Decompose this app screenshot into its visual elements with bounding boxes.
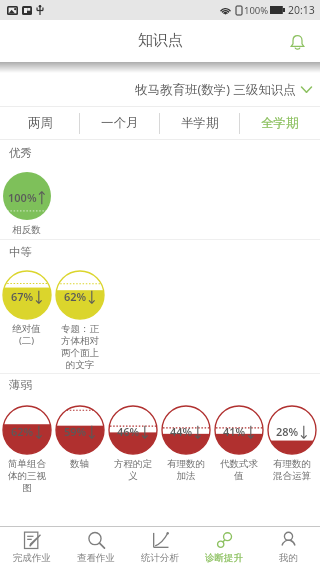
button[interactable]: 一个月	[80, 106, 160, 140]
button[interactable]: 半学期	[160, 106, 240, 140]
button[interactable]: 查看作业	[64, 526, 128, 568]
staticText: 数轴	[70, 458, 89, 470]
staticText: 一个月	[101, 115, 139, 131]
button[interactable]: 62%	[53, 270, 106, 370]
staticText: 知识点	[138, 31, 183, 50]
staticText: 统计分析	[141, 552, 179, 564]
button[interactable]: 59%	[53, 405, 106, 470]
staticText: 62%	[11, 424, 34, 439]
staticText: 100%	[244, 4, 269, 17]
staticText: 中等	[9, 245, 32, 259]
button[interactable]: Notifications	[284, 29, 310, 55]
staticText: 薄弱	[9, 378, 32, 392]
button[interactable]: 44%	[159, 405, 212, 481]
button[interactable]: 62%	[0, 405, 53, 493]
button[interactable]: 诊断提升	[192, 526, 256, 568]
button[interactable]: 67%	[0, 270, 53, 347]
button[interactable]: 统计分析	[128, 526, 192, 568]
button[interactable]: 41%	[212, 405, 265, 481]
staticText: 牧马教育班(数学) 三级知识点	[135, 81, 296, 98]
staticText: 完成作业	[13, 552, 51, 564]
staticText: 有理数的 加法	[167, 458, 205, 481]
staticText: 方程的定 义	[114, 458, 152, 481]
staticText: 绝对值 (二)	[12, 323, 41, 347]
button[interactable]: 28%	[265, 405, 318, 481]
button[interactable]: 全学期	[240, 106, 320, 140]
staticText: 两周	[28, 115, 53, 131]
button[interactable]: 牧马教育班(数学) 三级知识点	[127, 76, 320, 103]
staticText: 20:13	[288, 3, 315, 17]
button[interactable]: 两周	[0, 106, 80, 140]
staticText: 半学期	[181, 115, 219, 131]
staticText: 优秀	[9, 146, 32, 160]
staticText: 62%	[64, 289, 87, 304]
staticText: 全学期	[261, 115, 299, 131]
staticText: 查看作业	[77, 552, 115, 564]
button[interactable]: 我的	[256, 526, 320, 568]
staticText: 诊断提升	[205, 552, 243, 564]
staticText: 专题：正 方体相对 两个面上 的文字	[61, 323, 99, 370]
button[interactable]: 46%	[106, 405, 159, 481]
staticText: 简单组合 体的三视 图	[8, 458, 46, 493]
staticText: 我的	[279, 552, 298, 564]
staticText: 67%	[11, 289, 34, 304]
button[interactable]: 完成作业	[0, 526, 64, 568]
staticText: 44%	[170, 424, 193, 439]
button[interactable]: 100%	[0, 171, 53, 236]
staticText: 28%	[276, 424, 299, 439]
staticText: 100%	[8, 190, 37, 205]
staticText: 41%	[223, 424, 246, 439]
staticText: 59%	[64, 424, 87, 439]
staticText: 有理数的 混合运算	[273, 458, 311, 481]
staticText: 46%	[117, 424, 140, 439]
staticText: 相反数	[12, 224, 41, 236]
staticText: 代数式求 值	[220, 458, 258, 481]
